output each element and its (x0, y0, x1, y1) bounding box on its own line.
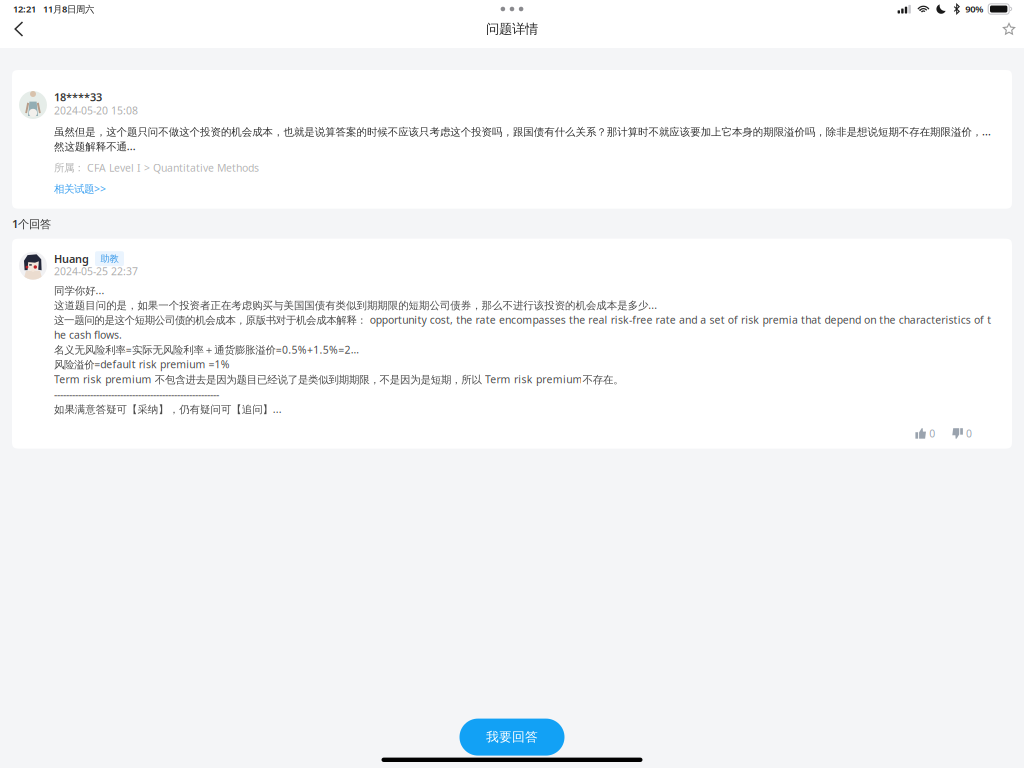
staticText: 如果满意答疑可【采纳】，仍有疑问可【追问】。 (54, 402, 283, 416)
staticText: 11月8日周六 (43, 3, 94, 15)
staticText: 虽然但是，这个题只问不做这个投资的机会成本，也就是说算答案的时候不应该只考虑这个… (54, 124, 991, 139)
staticText: 我要回答 (486, 729, 538, 745)
button[interactable]: 相关试题>> (54, 183, 106, 195)
button[interactable]: 点踩 (952, 426, 972, 441)
staticText: 名义无风险利率=实际无风险利率＋通货膨胀溢价=0.5%+1.5%=2% (54, 342, 359, 357)
staticText: 0 (966, 426, 972, 441)
staticText: 18****33 (54, 90, 102, 104)
staticText: 90% (965, 3, 983, 15)
staticText: 这道题目问的是，如果一个投资者正在考虑购买与美国国债有类似到期期限的短期公司债券… (54, 298, 658, 312)
staticText: 相关试题>> (54, 182, 106, 196)
button[interactable]: 收藏 (996, 16, 1022, 42)
staticText: Term risk premium 不包含进去是因为题目已经说了是类似到期期限，… (54, 372, 623, 386)
staticText: 1个回答 (12, 216, 51, 231)
staticText: 这一题问的是这个短期公司债的机会成本，原版书对于机会成本解释： opportun… (54, 313, 991, 327)
button[interactable]: 返回 (2, 14, 36, 44)
staticText: 同学你好， (54, 283, 105, 297)
staticText: Huang (54, 251, 89, 266)
staticText: 助教 (100, 253, 118, 265)
staticText: 问题详情 (486, 21, 538, 37)
staticText: 12:21 (13, 3, 36, 15)
staticText: 2024-05-20 15:08 (54, 103, 138, 118)
staticText: 然这题解释不通。 (54, 139, 137, 153)
staticText: 0 (929, 426, 935, 441)
button[interactable]: 点赞 (915, 426, 935, 441)
staticText: 风险溢价=default risk premium =1% (54, 357, 230, 372)
button[interactable]: 我要回答 (459, 719, 564, 756)
staticText: 2024-05-25 22:37 (54, 264, 138, 278)
staticText: CFA Level I > Quantitative Methods (84, 161, 259, 175)
staticText: 所属： (54, 161, 84, 174)
staticText: he cash flows. (54, 327, 122, 342)
staticText: ----------------------------------------… (54, 387, 219, 401)
